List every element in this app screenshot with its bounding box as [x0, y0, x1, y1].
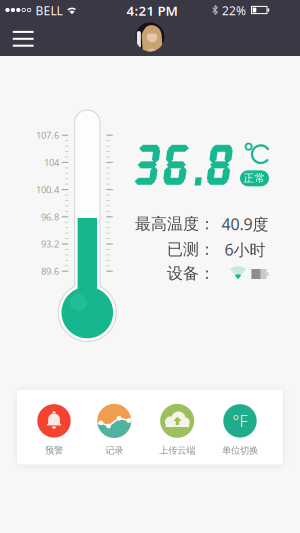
staticText: 107.6 [36, 129, 59, 141]
staticText: 记录 [105, 445, 123, 456]
button[interactable]: Profile [135, 22, 164, 51]
button[interactable]: 预警 [37, 404, 71, 456]
button[interactable]: 记录 [97, 404, 131, 456]
staticText: 上传云端 [159, 445, 195, 456]
staticText: 6小时 [224, 239, 265, 260]
staticText: 93.2 [41, 238, 59, 250]
staticText: 设备： [167, 264, 215, 283]
staticText: 已测： [167, 240, 215, 259]
staticText: 正常 [243, 172, 265, 185]
staticText: 96.8 [41, 211, 59, 223]
staticText: 预警 [45, 445, 63, 456]
staticText: 100.4 [36, 183, 59, 196]
staticText: 4:21 PM [126, 2, 177, 19]
staticText: 40.9度 [221, 213, 268, 235]
staticText: BELL [35, 2, 62, 18]
button[interactable]: Menu [13, 31, 34, 47]
staticText: 单位切换 [222, 445, 258, 456]
staticText: 最高温度： [135, 214, 215, 234]
staticText: 89.6 [41, 265, 59, 277]
staticText: 22% [222, 2, 246, 18]
button[interactable]: 上传云端 [159, 404, 195, 456]
button[interactable]: °F [222, 404, 258, 456]
staticText: °F [232, 410, 247, 431]
staticText: 104 [44, 156, 59, 169]
